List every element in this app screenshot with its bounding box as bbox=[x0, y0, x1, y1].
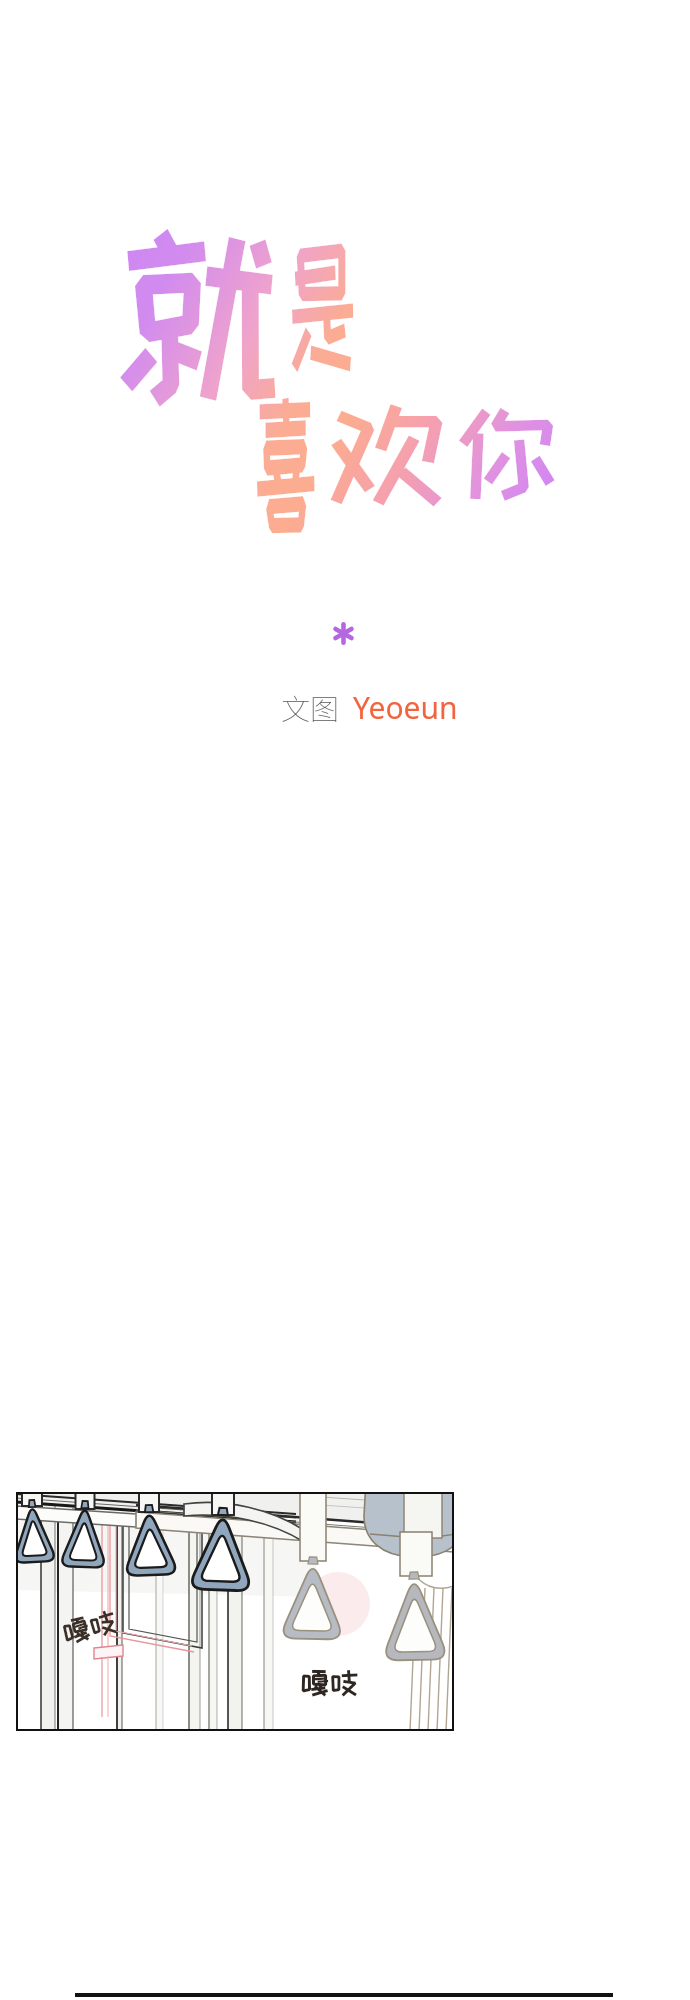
staticText: 是 bbox=[287, 229, 358, 382]
staticText: 你 bbox=[456, 396, 558, 509]
staticText: 嘎吱 bbox=[300, 1667, 359, 1699]
staticText: 嘎吱 bbox=[59, 1606, 121, 1648]
staticText: 就 bbox=[115, 208, 280, 420]
staticText: 喜 bbox=[254, 380, 318, 543]
staticText: Yeoeun bbox=[353, 687, 458, 728]
staticText: 文图 bbox=[281, 686, 340, 728]
staticText: 欢 bbox=[327, 392, 446, 513]
